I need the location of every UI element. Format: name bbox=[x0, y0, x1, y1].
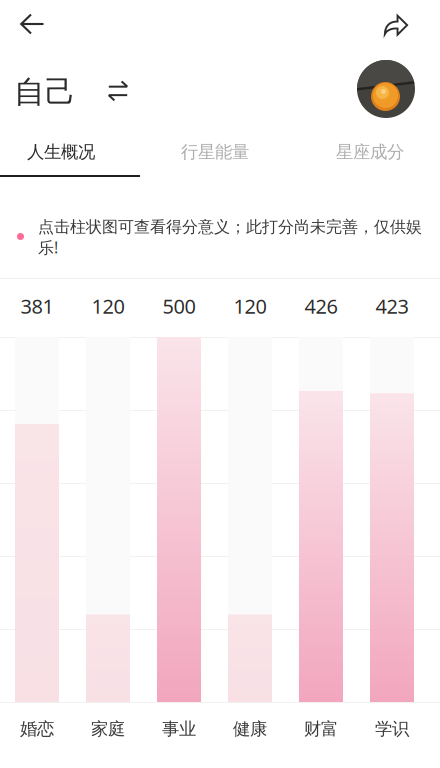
staticText: 事业 bbox=[162, 718, 196, 740]
staticText: 行星能量 bbox=[181, 141, 249, 163]
button[interactable]: Profile photo bbox=[357, 60, 415, 118]
staticText: 星座成分 bbox=[336, 141, 404, 163]
staticText: 自己 bbox=[14, 73, 76, 111]
staticText: 健康 bbox=[233, 718, 267, 740]
staticText: 学识 bbox=[375, 718, 409, 740]
staticText: 500 bbox=[162, 293, 195, 319]
staticText: 423 bbox=[375, 293, 408, 319]
button[interactable]: 行星能量 bbox=[145, 131, 285, 173]
button[interactable]: Back bbox=[10, 2, 54, 46]
staticText: 381 bbox=[20, 293, 53, 319]
staticText: 家庭 bbox=[91, 718, 125, 740]
staticText: 426 bbox=[304, 293, 337, 319]
button[interactable]: Switch chart bbox=[99, 72, 137, 110]
staticText: 婚恋 bbox=[20, 718, 54, 740]
staticText: 120 bbox=[233, 293, 266, 319]
staticText: 财富 bbox=[304, 718, 338, 740]
button[interactable]: Share bbox=[374, 3, 418, 47]
button[interactable]: 人生概况 bbox=[0, 131, 131, 173]
staticText: 120 bbox=[91, 293, 124, 319]
staticText: 点击柱状图可查看得分意义；此打分尚未完善，仅供娱乐! bbox=[38, 217, 422, 258]
staticText: 人生概况 bbox=[27, 141, 95, 163]
button[interactable]: 星座成分 bbox=[300, 131, 440, 173]
